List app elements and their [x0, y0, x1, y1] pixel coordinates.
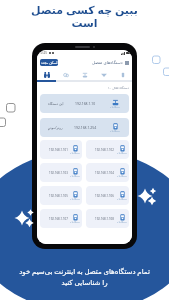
- staticText: 192.168.1.101: [49, 148, 68, 152]
- staticText: دستگاه ۲.۴: [117, 175, 127, 178]
- staticText: دستگاه ۲.۴: [117, 198, 127, 201]
- button[interactable]: Tab 5: [113, 69, 132, 80]
- button[interactable]: 192.168.1.108: [86, 209, 129, 228]
- button[interactable]: Tab 2: [56, 69, 75, 80]
- staticText: 192.168.1.10: [75, 101, 96, 106]
- staticText: 192.168.1.106: [95, 194, 114, 198]
- staticText: ببین چه کسی متصل است: [31, 2, 138, 30]
- button[interactable]: این دستگاه: [40, 94, 129, 113]
- staticText: ۱۰ دستگاه فعال: [108, 86, 129, 90]
- staticText: 192.168.1.102: [95, 148, 114, 152]
- staticText: دستگاه ۲.۴: [70, 175, 80, 178]
- button[interactable]: 192.168.1.105: [40, 186, 82, 205]
- staticText: دستگاه ۲.۴: [70, 198, 80, 201]
- staticText: 192.168.1.105: [49, 194, 68, 198]
- staticText: 192.168.1.103: [49, 171, 68, 175]
- staticText: دستگاه‌های متصل: [92, 60, 123, 66]
- staticText: دستگاه ۲.۴: [110, 130, 120, 133]
- staticText: روتر/مودم: [48, 125, 63, 130]
- staticText: دستگاه ۲.۴: [117, 152, 127, 155]
- staticText: تمام دستگاه‌های متصل به اینترنت بی‌سیم خ…: [19, 267, 150, 287]
- button[interactable]: اسکن مجدد: [40, 59, 58, 66]
- button[interactable]: 192.168.1.107: [40, 209, 82, 228]
- staticText: 192.168.1.254: [74, 125, 97, 130]
- button[interactable]: Tab 4: [94, 69, 113, 80]
- button[interactable]: Tab 1: [37, 69, 56, 80]
- button[interactable]: روتر/مودم: [40, 118, 129, 137]
- button[interactable]: 192.168.1.101: [40, 140, 82, 159]
- button[interactable]: 192.168.1.106: [86, 186, 129, 205]
- staticText: 192.168.1.104: [95, 171, 114, 175]
- staticText: 192.168.1.107: [49, 217, 68, 221]
- staticText: این دستگاه: [48, 101, 64, 106]
- staticText: 10:25: [39, 51, 48, 55]
- staticText: دستگاه ۲.۴: [110, 106, 120, 109]
- button[interactable]: 192.168.1.102: [86, 140, 129, 159]
- staticText: دستگاه ۲.۴: [70, 152, 80, 155]
- staticText: دستگاه ۲.۴: [70, 221, 80, 224]
- staticText: 192.168.1.108: [95, 217, 114, 221]
- staticText: دستگاه ۲.۴: [117, 221, 127, 224]
- button[interactable]: Tab 3: [75, 69, 94, 80]
- button[interactable]: 192.168.1.104: [86, 163, 129, 182]
- staticText: اسکن مجدد: [41, 60, 58, 65]
- button[interactable]: 192.168.1.103: [40, 163, 82, 182]
